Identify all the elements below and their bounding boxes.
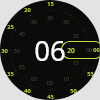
staticText: 25 — [7, 23, 14, 31]
staticText: 40 — [31, 18, 37, 25]
staticText: 50 — [14, 47, 20, 54]
staticText: 00 — [86, 46, 92, 53]
staticText: 15 — [73, 60, 79, 67]
staticText: 10 — [63, 75, 69, 82]
staticText: 45 — [19, 30, 25, 37]
staticText: 50 — [70, 87, 77, 95]
staticText: 06 — [34, 32, 66, 69]
staticText: 30 — [63, 18, 69, 25]
staticText: 30 — [1, 47, 8, 55]
staticText: 40 — [24, 87, 31, 95]
staticText: 00 — [31, 75, 37, 82]
staticText: 35 — [47, 14, 53, 21]
staticText: 00 — [93, 46, 100, 54]
staticText: 15 — [47, 0, 54, 8]
staticText: 20 — [24, 6, 31, 14]
button[interactable]: Watch face showing 6:20 — [0, 0, 100, 100]
staticText: 55 — [19, 63, 25, 70]
staticText: 35 — [7, 70, 14, 78]
staticText: 20 — [67, 46, 75, 55]
staticText: 05 — [47, 79, 53, 86]
staticText: 25 — [73, 33, 79, 40]
staticText: 55 — [87, 70, 94, 78]
staticText: 45 — [47, 93, 54, 100]
